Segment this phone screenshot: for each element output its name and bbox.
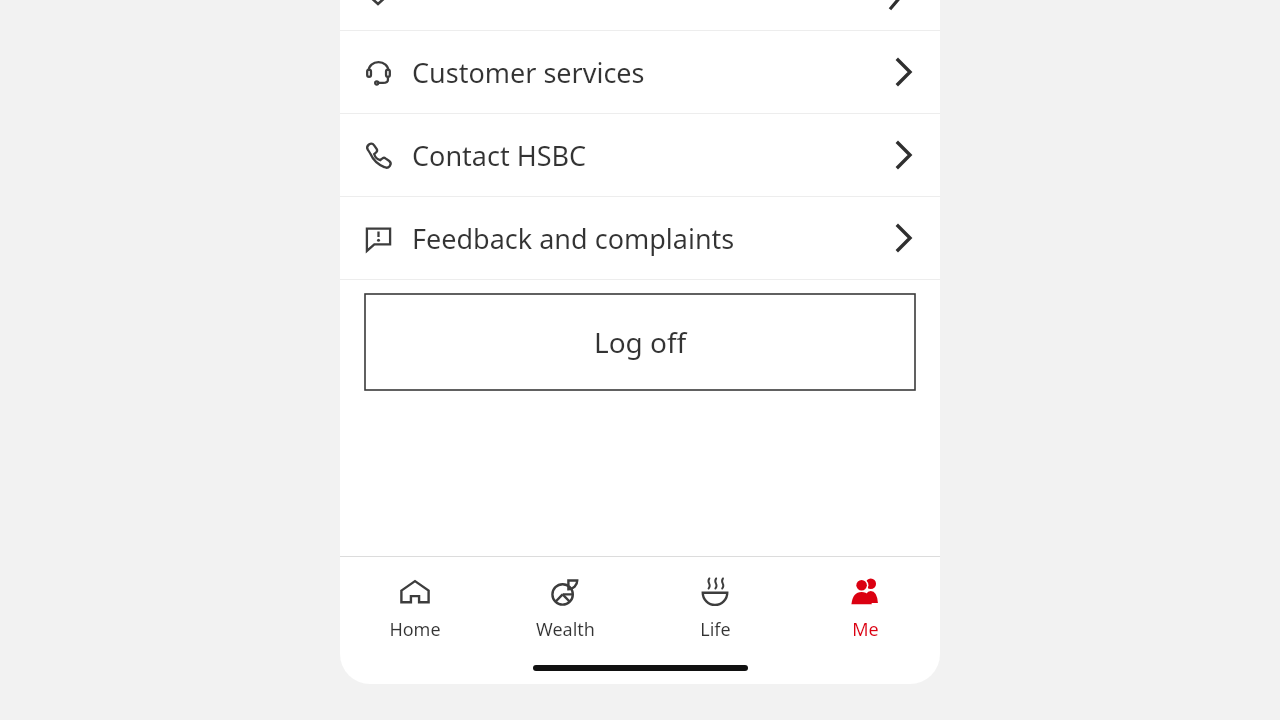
button[interactable]: Life: [640, 575, 790, 642]
button[interactable]: Feedback and complaints: [340, 197, 940, 279]
staticText: Life: [700, 617, 731, 642]
staticText: Wealth: [536, 617, 595, 642]
staticText: Feedback and complaints: [412, 220, 735, 257]
button[interactable]: Wealth: [490, 575, 640, 642]
button[interactable]: Home: [340, 575, 490, 642]
button[interactable]: Me: [790, 575, 940, 642]
button[interactable]: Customer services: [340, 31, 940, 113]
staticText: Me: [852, 617, 879, 642]
staticText: Home: [389, 617, 441, 642]
button[interactable]: Contact HSBC: [340, 114, 940, 196]
staticText: Log off: [594, 323, 687, 361]
staticText: Contact HSBC: [412, 137, 587, 174]
staticText: Customer services: [412, 54, 645, 91]
button[interactable]: Log off: [365, 294, 915, 390]
